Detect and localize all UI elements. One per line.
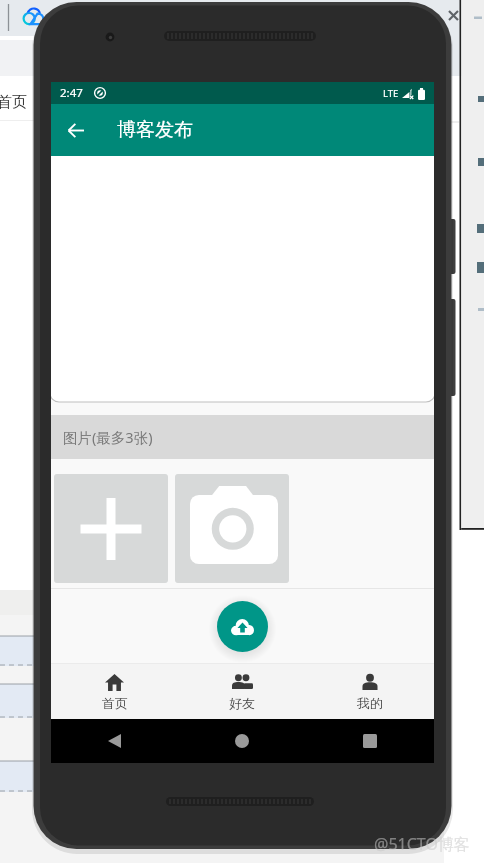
- staticText: 博客发布: [117, 118, 193, 142]
- staticText: 首页: [0, 93, 27, 112]
- button[interactable]: Back: [51, 719, 178, 763]
- staticText: 图片(最多3张): [63, 427, 153, 447]
- staticText: @51CTO博客: [374, 833, 470, 855]
- button[interactable]: Upload: [217, 601, 268, 652]
- button[interactable]: 好友: [178, 664, 306, 719]
- staticText: LTE: [383, 87, 399, 100]
- button[interactable]: Back: [60, 114, 92, 146]
- staticText: 首页: [102, 695, 128, 711]
- button[interactable]: Photo: [175, 474, 289, 583]
- button[interactable]: 首页: [51, 664, 178, 719]
- button[interactable]: 我的: [306, 664, 434, 719]
- button[interactable]: Home: [178, 719, 306, 763]
- button[interactable]: Add image: [54, 474, 168, 583]
- button[interactable]: Recents: [306, 719, 434, 763]
- staticText: 我的: [357, 695, 383, 711]
- staticText: 2:47: [60, 85, 83, 101]
- staticText: 好友: [229, 695, 255, 711]
